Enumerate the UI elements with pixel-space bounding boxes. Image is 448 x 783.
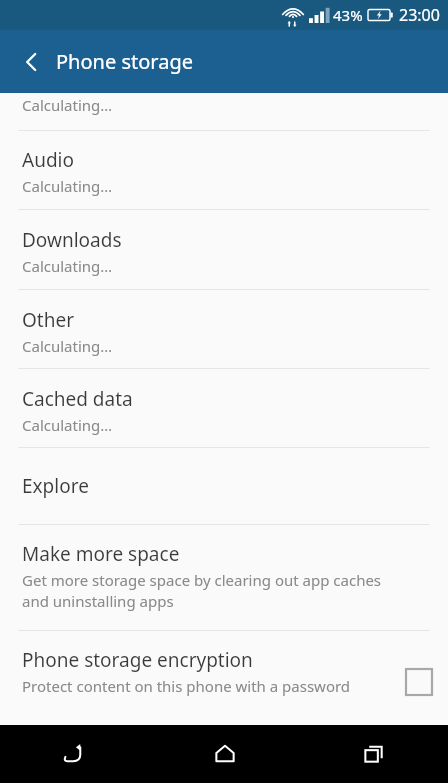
button[interactable]: Other xyxy=(0,290,448,368)
staticText: 23:00 xyxy=(399,4,440,26)
staticText: Explore xyxy=(22,473,89,499)
staticText: Phone storage xyxy=(56,48,193,75)
button[interactable]: Home xyxy=(150,725,299,783)
staticText: Cached data xyxy=(22,386,133,412)
staticText: Protect content on this phone with a pas… xyxy=(22,676,351,696)
button[interactable]: Make more space xyxy=(0,525,448,630)
button[interactable]: Audio xyxy=(0,131,448,209)
button[interactable]: Recent apps xyxy=(299,725,448,783)
button[interactable]: Phone storage encryption xyxy=(0,631,448,725)
button[interactable]: Cached data xyxy=(0,369,448,447)
button[interactable]: Back xyxy=(10,40,54,84)
staticText: Audio xyxy=(22,147,74,173)
button[interactable]: Back xyxy=(0,725,150,783)
staticText: Calculating… xyxy=(22,176,113,196)
staticText: Phone storage encryption xyxy=(22,647,253,673)
button[interactable]: Explore xyxy=(0,448,448,524)
staticText: Calculating… xyxy=(22,256,113,276)
staticText: Calculating… xyxy=(22,336,113,356)
staticText: Make more space xyxy=(22,541,180,567)
staticText: Calculating… xyxy=(22,415,113,435)
staticText: Get more storage space by clearing out a… xyxy=(22,570,408,612)
button[interactable]: Downloads xyxy=(0,210,448,289)
staticText: Other xyxy=(22,307,75,333)
staticText: 43% xyxy=(333,5,363,25)
staticText: Downloads xyxy=(22,227,122,253)
button[interactable]: Calculating… xyxy=(0,93,448,130)
staticText: Calculating… xyxy=(22,95,113,115)
